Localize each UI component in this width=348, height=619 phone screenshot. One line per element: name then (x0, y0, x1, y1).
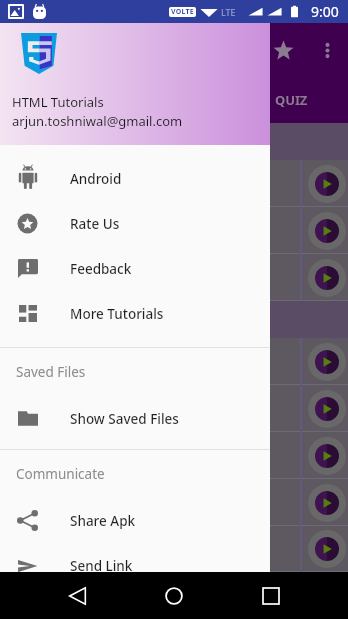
button[interactable]: Back (54, 572, 101, 619)
button[interactable]: Send Link (0, 543, 270, 572)
staticText: 9:00 (311, 2, 339, 21)
staticText: HTML Tutorials (12, 93, 104, 111)
staticText: VOLTE (171, 7, 194, 17)
button[interactable]: Recent apps (247, 572, 294, 619)
button[interactable]: More Tutorials (0, 291, 270, 336)
button[interactable]: Rate Us (0, 201, 270, 246)
staticText: Send Link (70, 557, 133, 572)
staticText: arjun.toshniwal@gmail.com (12, 112, 183, 130)
button[interactable]: Share Apk (0, 498, 270, 543)
button[interactable] (0, 432, 348, 479)
staticText: Communicate (16, 465, 105, 483)
staticText: QUIZ (275, 91, 308, 109)
button[interactable] (0, 526, 348, 572)
button[interactable]: More options (307, 30, 347, 70)
button[interactable] (0, 254, 348, 301)
staticText: Share Apk (70, 512, 136, 530)
button[interactable]: Feedback (0, 246, 270, 291)
staticText: Rate Us (70, 215, 120, 233)
staticText: More Tutorials (70, 305, 164, 323)
button[interactable]: Favourite (263, 30, 303, 70)
button[interactable]: Home (150, 572, 197, 619)
button[interactable] (0, 160, 348, 207)
staticText: Show Saved Files (70, 410, 179, 428)
staticText: Saved Files (16, 363, 86, 381)
button[interactable]: Show Saved Files (0, 396, 270, 441)
button[interactable] (0, 385, 348, 432)
staticText: LTE (221, 6, 236, 18)
button[interactable] (0, 338, 348, 385)
button[interactable] (0, 207, 348, 254)
button[interactable] (0, 479, 348, 526)
staticText: Android (70, 170, 122, 188)
staticText: Feedback (70, 260, 132, 278)
button[interactable]: Android (0, 156, 270, 201)
